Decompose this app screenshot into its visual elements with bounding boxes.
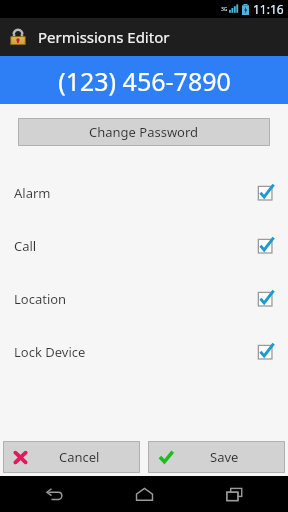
button[interactable]: Alarm xyxy=(0,166,288,219)
button[interactable]: Change Password xyxy=(18,118,270,146)
button[interactable]: Save xyxy=(148,441,285,473)
staticText: Cancel xyxy=(59,448,100,466)
staticText: Change Password xyxy=(89,123,199,141)
button[interactable]: Home xyxy=(108,476,180,512)
staticText: Save xyxy=(210,448,239,466)
button[interactable]: Recent apps xyxy=(198,476,270,512)
button[interactable]: Location xyxy=(0,272,288,325)
button[interactable]: Lock Device xyxy=(0,325,288,378)
staticText: (123) 456-7890 xyxy=(58,64,231,98)
staticText: 11:16 xyxy=(253,1,284,17)
button[interactable]: Cancel xyxy=(3,441,140,473)
button[interactable]: Call xyxy=(0,219,288,272)
button[interactable]: Back xyxy=(18,476,90,512)
staticText: Permissions Editor xyxy=(38,27,170,47)
staticText: Call xyxy=(14,237,37,255)
staticText: Location xyxy=(14,290,67,308)
staticText: Alarm xyxy=(14,184,51,202)
staticText: Lock Device xyxy=(14,343,86,361)
staticText: 3G xyxy=(221,6,228,13)
